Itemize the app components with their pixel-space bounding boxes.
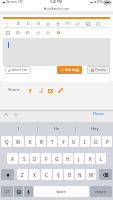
button[interactable]: Share by email: [45, 85, 55, 96]
button[interactable]: [53, 28, 63, 37]
button[interactable]: I: [80, 136, 90, 147]
button[interactable]: E: [25, 136, 35, 147]
button[interactable]: I: [0, 122, 37, 136]
staticText: M: [89, 172, 94, 178]
button[interactable]: C: [41, 169, 52, 180]
button[interactable]: O: [91, 136, 101, 147]
button[interactable]: space: [34, 186, 89, 197]
button[interactable]: Next field: [12, 110, 20, 118]
button[interactable]: G: [52, 153, 62, 164]
staticText: H: [66, 156, 70, 162]
button[interactable]: [83, 19, 93, 28]
staticText: P: [106, 139, 109, 145]
button[interactable]: K: [85, 153, 95, 164]
button[interactable]: A: [7, 153, 18, 164]
button[interactable]: return: [90, 186, 112, 197]
button[interactable]: T: [63, 19, 73, 28]
staticText: Hey: [91, 126, 99, 132]
button[interactable]: [13, 28, 23, 37]
staticText: S: [23, 156, 26, 162]
staticText: volkation.com: [47, 6, 70, 11]
staticText: f: [29, 87, 32, 95]
button[interactable]: S: [19, 153, 29, 164]
button[interactable]: [3, 19, 13, 28]
button[interactable]: L: [96, 153, 106, 164]
staticText: Q: [5, 139, 9, 145]
button[interactable]: F: [41, 153, 51, 164]
staticText: F: [45, 156, 48, 162]
staticText: Preview: [95, 68, 106, 72]
button[interactable]: Share on Facebook: [25, 85, 35, 96]
button[interactable]: Emoji: [14, 186, 23, 197]
staticText: N: [78, 172, 82, 178]
button[interactable]: [103, 19, 110, 28]
button[interactable]: M: [86, 169, 96, 180]
staticText: Y: [62, 139, 65, 145]
staticText: C: [45, 172, 48, 178]
button[interactable]: [23, 28, 33, 37]
button[interactable]: 123: [1, 186, 13, 197]
staticText: 123: [4, 190, 10, 194]
staticText: A: [11, 156, 14, 162]
staticText: J: [78, 156, 80, 162]
staticText: U: [37, 21, 40, 26]
button[interactable]: I: [23, 19, 33, 28]
button[interactable]: W: [13, 136, 24, 147]
staticText: return: [95, 189, 107, 194]
staticText: B: [68, 172, 71, 178]
button[interactable]: Share on Twitter: [35, 85, 45, 96]
button[interactable]: N: [75, 169, 85, 180]
button[interactable]: Hey: [76, 122, 113, 136]
button[interactable]: Dictation: [24, 186, 33, 197]
button[interactable]: H: [63, 153, 73, 164]
staticText: I: [27, 21, 29, 26]
staticText: Post reply: [65, 68, 79, 72]
staticText: Done: [93, 111, 104, 117]
button[interactable]: Shift: [1, 169, 14, 180]
button[interactable]: B: [64, 169, 74, 180]
button[interactable]: Done: [92, 110, 105, 118]
button[interactable]: Copy link: [55, 85, 65, 96]
staticText: T: [65, 21, 68, 26]
button[interactable]: Preview: [87, 66, 110, 74]
button[interactable]: P: [102, 136, 112, 147]
button[interactable]: D: [30, 153, 40, 164]
staticText: B: [17, 21, 20, 26]
button[interactable]: V: [53, 169, 63, 180]
button[interactable]: [3, 28, 13, 37]
staticText: D: [33, 156, 37, 162]
button[interactable]: Backspace: [99, 169, 112, 180]
button[interactable]: He: [38, 122, 75, 136]
button[interactable]: U: [69, 136, 79, 147]
button[interactable]: R: [36, 136, 46, 147]
button[interactable]: T: [47, 136, 57, 147]
staticText: L: [100, 156, 103, 162]
staticText: W: [16, 139, 21, 145]
staticText: 9:40 PM: [50, 0, 63, 4]
button[interactable]: Post reply: [57, 66, 82, 74]
button[interactable]: [43, 19, 53, 28]
button[interactable]: [33, 28, 43, 37]
staticText: Share:: [8, 87, 21, 93]
button[interactable]: Q: [1, 136, 12, 147]
button[interactable]: J: [74, 153, 84, 164]
button[interactable]: Y: [58, 136, 68, 147]
button[interactable]: U: [33, 19, 43, 28]
staticText: space: [56, 189, 67, 194]
button[interactable]: [43, 28, 53, 37]
button[interactable]: Z: [17, 169, 28, 180]
button[interactable]: Attach files: [5, 66, 31, 74]
button[interactable]: [93, 19, 103, 28]
button[interactable]: [53, 19, 63, 28]
staticText: R: [40, 139, 43, 145]
staticText: K: [89, 156, 92, 162]
button[interactable]: B: [13, 19, 23, 28]
staticText: G: [55, 156, 59, 162]
button[interactable]: [73, 19, 83, 28]
staticText: Z: [21, 172, 24, 178]
button[interactable]: Previous field: [2, 110, 10, 118]
staticText: O: [94, 139, 98, 145]
staticText: I: [84, 139, 86, 145]
button[interactable]: X: [29, 169, 40, 180]
staticText: Verizon LTE: [6, 0, 23, 4]
